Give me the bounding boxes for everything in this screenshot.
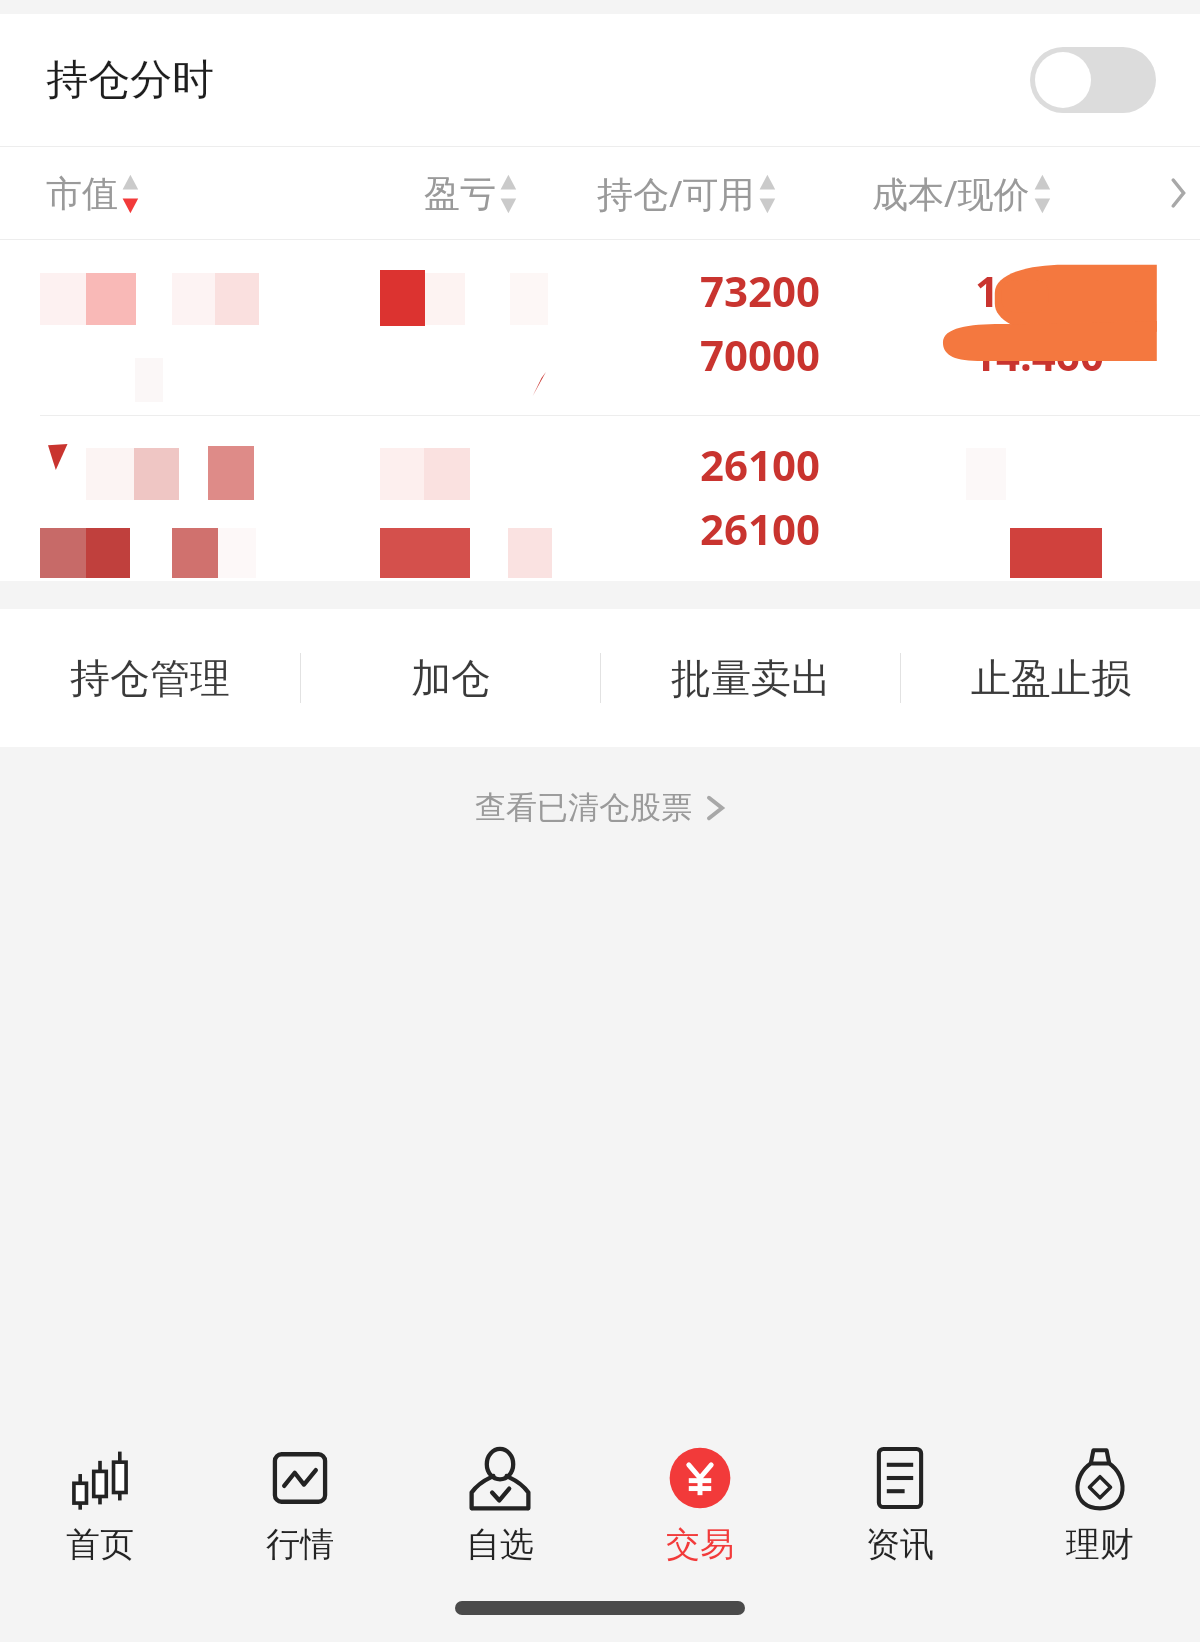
staticText: 批量卖出 bbox=[671, 653, 831, 703]
button[interactable]: 盈亏 bbox=[424, 171, 520, 216]
button[interactable]: 持仓/可用 bbox=[597, 169, 779, 218]
staticText: 理财 bbox=[1066, 1523, 1134, 1566]
staticText: 14.460 bbox=[972, 326, 1104, 383]
staticText: 行情 bbox=[266, 1523, 334, 1566]
button[interactable]: 查看已清仓股票 bbox=[0, 747, 1200, 867]
staticText: 止盈止损 bbox=[971, 653, 1131, 703]
staticText: 查看已清仓股票 bbox=[475, 788, 692, 827]
button[interactable]: 批量卖出 bbox=[601, 609, 900, 747]
button[interactable]: 交易 bbox=[600, 1420, 800, 1590]
staticText: 26100 bbox=[700, 436, 821, 493]
staticText: 73200 bbox=[700, 262, 821, 319]
staticText: 加仓 bbox=[411, 653, 491, 703]
button[interactable]: 自选 bbox=[400, 1420, 600, 1590]
staticText: 首页 bbox=[66, 1523, 134, 1566]
staticText: 26100 bbox=[700, 500, 821, 557]
button[interactable]: 止盈止损 bbox=[901, 609, 1200, 747]
staticText: 交易 bbox=[666, 1523, 734, 1566]
button[interactable]: 行情 bbox=[200, 1420, 400, 1590]
staticText: 1 bbox=[975, 262, 1000, 319]
button[interactable]: 73200 bbox=[0, 240, 1200, 415]
button[interactable]: 持仓管理 bbox=[0, 609, 300, 747]
staticText: 持仓管理 bbox=[70, 653, 230, 703]
button[interactable]: 持仓分时开关 bbox=[1030, 47, 1156, 113]
staticText: 自选 bbox=[466, 1523, 534, 1566]
button[interactable]: 26100 bbox=[0, 416, 1200, 581]
button[interactable]: 加仓 bbox=[301, 609, 600, 747]
button[interactable]: 市值 bbox=[46, 171, 142, 216]
staticText: 市值 bbox=[46, 171, 118, 216]
staticText: 70000 bbox=[700, 326, 821, 383]
staticText: 持仓分时 bbox=[46, 54, 214, 107]
button[interactable]: 成本/现价 bbox=[872, 169, 1054, 218]
staticText: 盈亏 bbox=[424, 171, 496, 216]
button[interactable]: 首页 bbox=[0, 1420, 200, 1590]
staticText: 成本/现价 bbox=[872, 169, 1030, 218]
staticText: 资讯 bbox=[866, 1523, 934, 1566]
staticText: 持仓/可用 bbox=[597, 169, 755, 218]
button[interactable]: 资讯 bbox=[800, 1420, 1000, 1590]
button[interactable]: 理财 bbox=[1000, 1420, 1200, 1590]
